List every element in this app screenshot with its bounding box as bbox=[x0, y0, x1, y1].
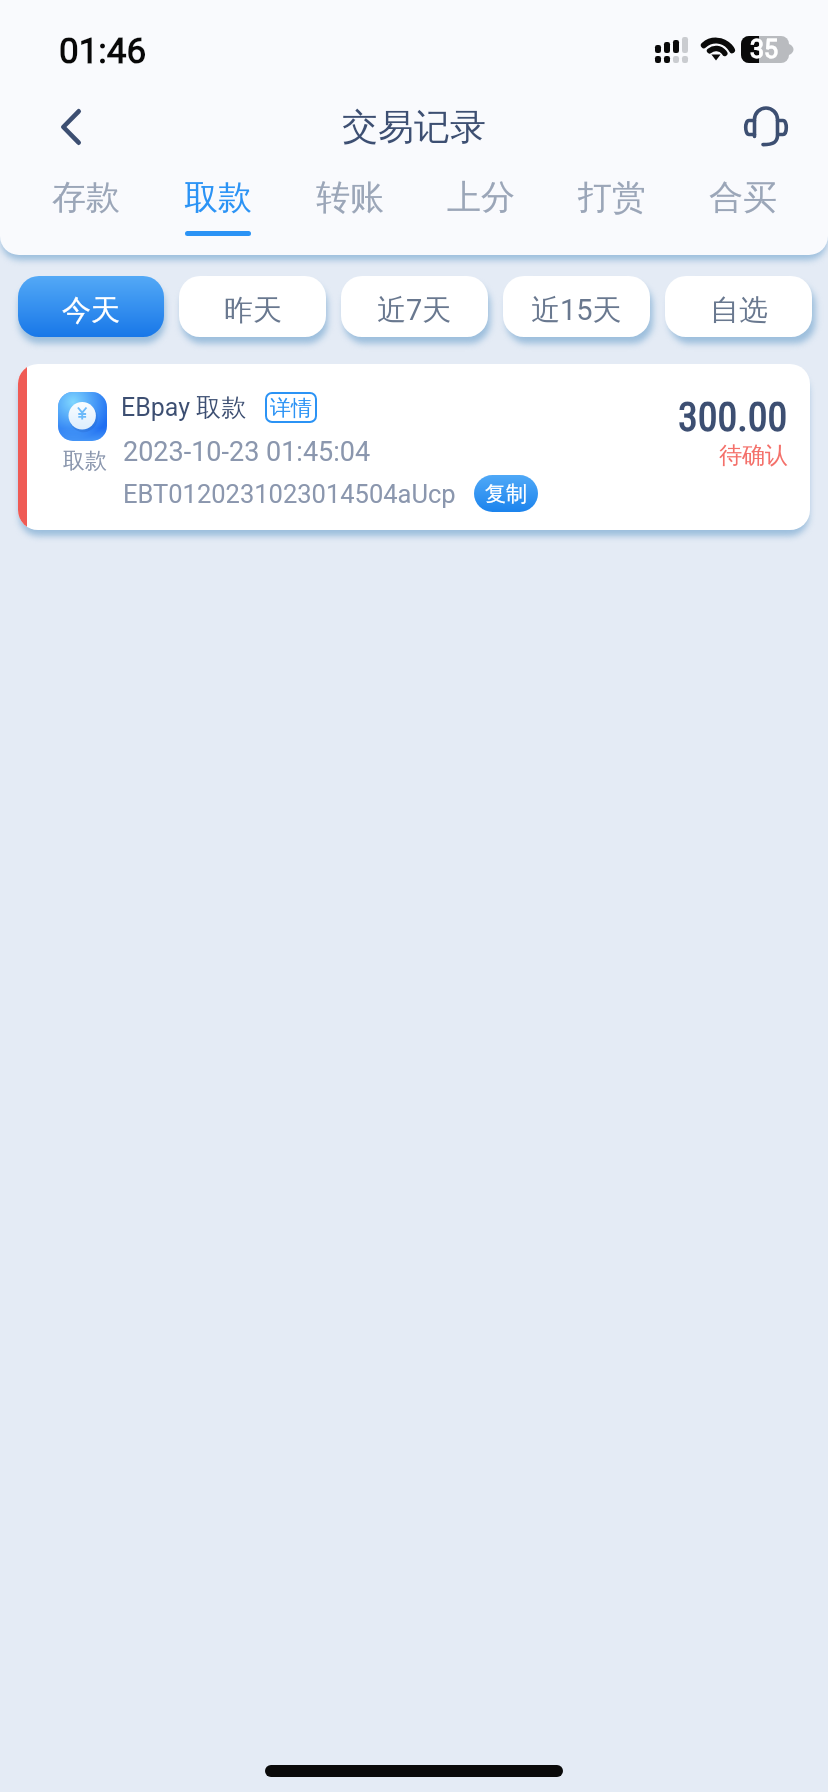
staticText: 取款 bbox=[184, 176, 252, 219]
staticText: 上分 bbox=[447, 176, 515, 219]
staticText: 01:46 bbox=[59, 31, 147, 72]
button[interactable]: Customer service bbox=[732, 91, 802, 161]
staticText: 近7天 bbox=[377, 292, 452, 329]
staticText: 35 bbox=[750, 35, 779, 62]
button[interactable]: 存款 bbox=[20, 165, 152, 255]
staticText: EBpay 取款 bbox=[121, 392, 247, 423]
staticText: 交易记录 bbox=[342, 104, 486, 149]
button[interactable]: 今天 bbox=[18, 276, 164, 337]
staticText: 300.00 bbox=[678, 394, 788, 441]
button[interactable]: 打赏 bbox=[546, 165, 677, 255]
button[interactable]: 转账 bbox=[284, 165, 415, 255]
button[interactable]: 上分 bbox=[415, 165, 546, 255]
button[interactable]: 取款 bbox=[18, 364, 810, 530]
button[interactable]: 复制 bbox=[474, 475, 538, 512]
staticText: 2023-10-23 01:45:04 bbox=[123, 436, 371, 468]
staticText: EBT0120231023014504aUcp bbox=[123, 479, 456, 509]
button[interactable]: 昨天 bbox=[179, 276, 326, 337]
button[interactable]: 自选 bbox=[665, 276, 812, 337]
staticText: 自选 bbox=[710, 292, 768, 329]
button[interactable]: 近15天 bbox=[503, 276, 650, 337]
staticText: 取款 bbox=[63, 447, 107, 475]
staticText: 今天 bbox=[62, 292, 120, 329]
staticText: 转账 bbox=[316, 176, 384, 219]
staticText: 近15天 bbox=[531, 292, 622, 329]
staticText: 存款 bbox=[52, 176, 120, 219]
staticText: 合买 bbox=[709, 176, 777, 219]
staticText: 详情 bbox=[270, 395, 312, 421]
staticText: 复制 bbox=[485, 481, 527, 507]
staticText: 待确认 bbox=[719, 441, 788, 470]
button[interactable]: 取款 bbox=[152, 165, 284, 255]
staticText: 昨天 bbox=[224, 292, 282, 329]
staticText: 打赏 bbox=[578, 176, 646, 219]
button[interactable]: Back bbox=[36, 92, 106, 162]
button[interactable]: 合买 bbox=[677, 165, 808, 255]
button[interactable]: 近7天 bbox=[341, 276, 488, 337]
button[interactable]: 详情 bbox=[265, 392, 317, 423]
